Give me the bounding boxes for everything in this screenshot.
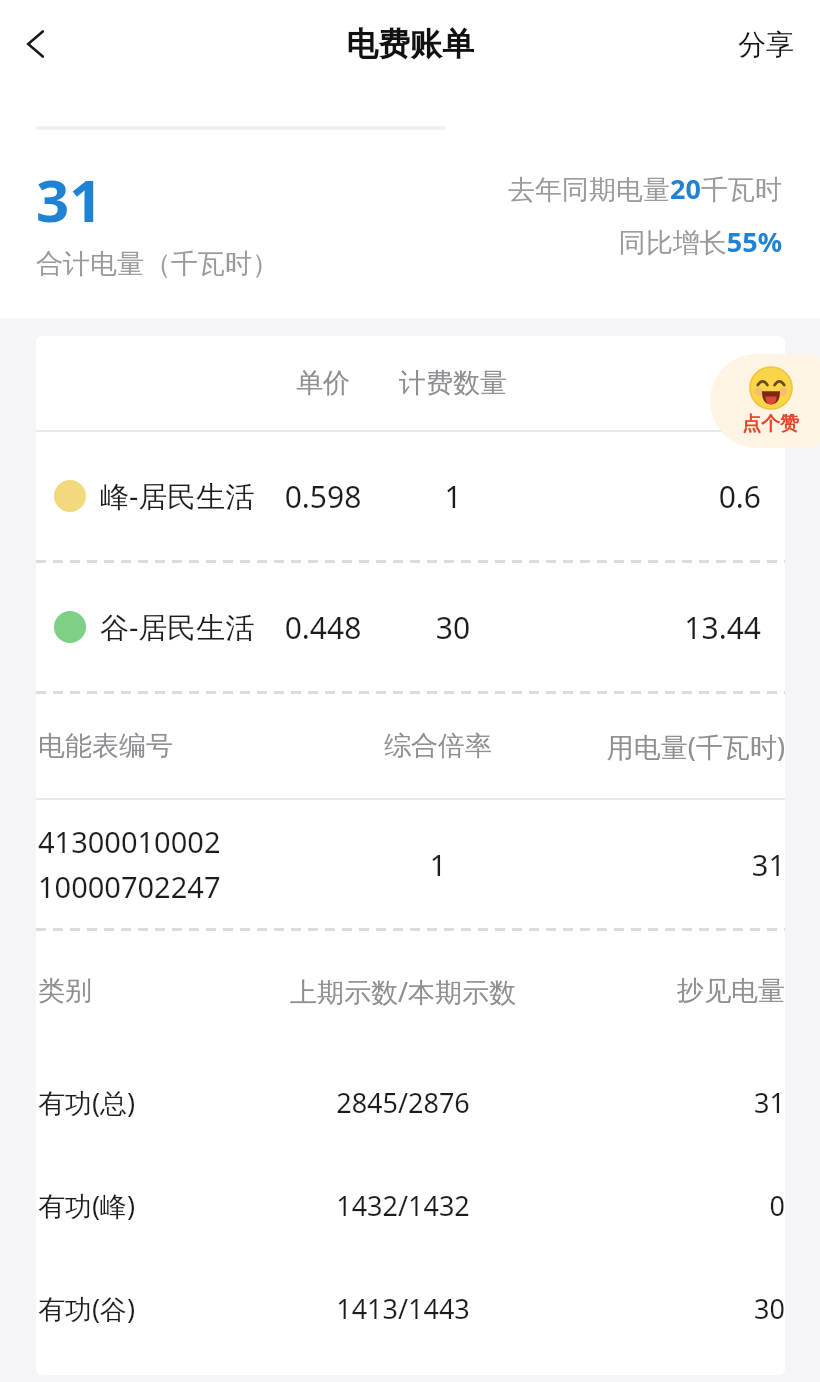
staticText: 31 [538,845,785,884]
button[interactable]: 谷-居民生活 [36,563,785,691]
staticText: 合计电量（千瓦时） [36,247,279,281]
staticText: 谷-居民生活 [100,607,268,647]
button[interactable]: 有功(峰) [36,1154,785,1257]
staticText: 0.448 [268,607,378,648]
staticText: 30 [378,607,528,648]
staticText: 0.6 [528,476,761,517]
staticText: 有功(总) [38,1084,268,1121]
staticText: 31 [538,1084,785,1121]
button[interactable]: 点个赞 [710,354,820,448]
staticText: 类别 [38,974,268,1008]
staticText: 1432/1432 [268,1187,538,1224]
staticText: 同比增长55% [618,223,782,260]
staticText: 单价 [268,366,378,400]
staticText: 上期示数/本期示数 [268,973,538,1010]
button[interactable]: 返回 [8,16,64,72]
staticText: 抄见电量 [538,974,785,1008]
staticText: 0.598 [268,476,378,517]
staticText: 点个赞 [742,412,799,436]
staticText: 1413/1443 [268,1290,538,1327]
staticText: 计费数量 [378,366,528,400]
staticText: 2845/2876 [268,1084,538,1121]
staticText: 0 [538,1187,785,1224]
staticText: 13.44 [528,607,761,648]
staticText: 分享 [738,27,794,62]
staticText: 1 [338,845,538,884]
button[interactable]: 有功(总) [36,1051,785,1154]
staticText: 电费账单 [346,24,474,64]
staticText: 用电量(千瓦时) [538,728,785,765]
staticText: 1 [378,476,528,517]
button[interactable]: 有功(谷) [36,1257,785,1360]
staticText: 峰-居民生活 [100,476,268,516]
button[interactable]: 峰-居民生活 [36,432,785,560]
staticText: 电能表编号 [38,729,338,763]
staticText: 41300010002 [38,822,221,861]
staticText: 有功(谷) [38,1290,268,1327]
staticText: 综合倍率 [338,729,538,763]
button[interactable]: 分享 [712,13,820,76]
staticText: 30 [538,1290,785,1327]
staticText: 有功(峰) [38,1187,268,1224]
staticText: 去年同期电量20千瓦时 [508,170,782,207]
staticText: 31 [36,160,103,239]
staticText: 10000702247 [38,867,221,906]
